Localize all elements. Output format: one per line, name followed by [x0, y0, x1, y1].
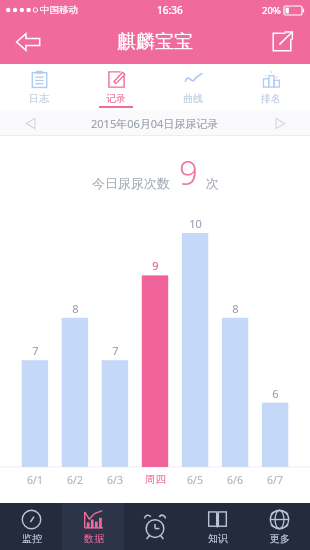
staticText: 7 [32, 343, 39, 358]
button[interactable]: 排名 [232, 64, 310, 110]
staticText: 曲线 [183, 92, 203, 105]
staticText: 6 [272, 386, 279, 401]
staticText: 9 [152, 258, 159, 273]
button[interactable]: Alarm [124, 503, 186, 550]
button[interactable]: 知识 [186, 503, 248, 550]
staticText: 8 [232, 301, 239, 316]
staticText: 记录 [106, 92, 126, 105]
button[interactable]: 数据 [62, 503, 124, 550]
staticText: 6/6 [227, 473, 243, 487]
staticText: 麒麟宝宝 [117, 30, 193, 54]
staticText: 6/7 [267, 473, 283, 487]
staticText: 20% [262, 4, 281, 17]
staticText: 更多 [270, 532, 290, 545]
staticText: 数据 [84, 532, 104, 545]
button[interactable]: Previous day [0, 110, 60, 136]
button[interactable]: 记录 [77, 64, 154, 110]
staticText: 8 [72, 301, 79, 316]
staticText: 中国移动 [40, 4, 78, 16]
button[interactable]: 日志 [0, 64, 77, 110]
button[interactable]: 更多 [248, 503, 310, 550]
button[interactable]: Share [262, 22, 302, 62]
staticText: 日志 [29, 92, 49, 105]
staticText: 知识 [208, 532, 228, 545]
staticText: 排名 [261, 92, 281, 105]
staticText: 16:36 [157, 3, 183, 17]
staticText: 6/2 [67, 473, 83, 487]
button[interactable]: Next day [250, 110, 310, 136]
staticText: 9 [179, 150, 198, 195]
button[interactable]: Back [8, 22, 48, 62]
staticText: 今日尿尿次数 [92, 175, 170, 191]
staticText: 次 [206, 175, 219, 191]
staticText: 2015年06月04日尿尿记录 [91, 116, 219, 131]
staticText: 周四 [145, 473, 166, 486]
button[interactable]: 曲线 [154, 64, 232, 110]
staticText: 6/3 [107, 473, 123, 487]
staticText: 10 [189, 216, 202, 231]
staticText: 6/1 [27, 473, 43, 487]
button[interactable]: 监控 [0, 503, 62, 550]
staticText: 7 [112, 343, 119, 358]
other: Alarm [124, 503, 186, 550]
staticText: 6/5 [187, 473, 203, 487]
staticText: 监控 [22, 532, 42, 545]
